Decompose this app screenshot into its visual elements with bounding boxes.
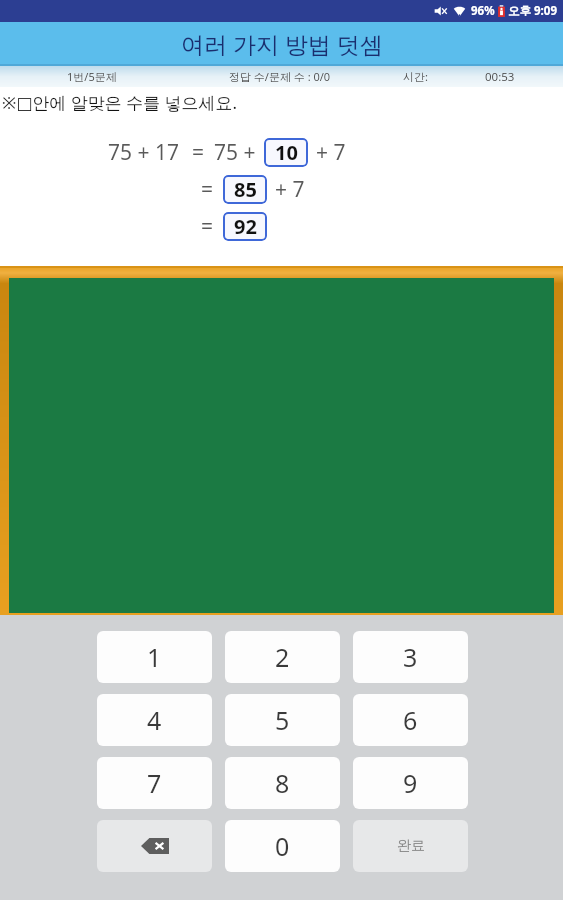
staticText: 3 <box>403 640 418 674</box>
button[interactable]: 7 <box>97 757 212 809</box>
staticText: + 7 <box>316 138 346 167</box>
button[interactable]: 9 <box>353 757 468 809</box>
staticText: 7 <box>147 766 162 800</box>
button[interactable]: 3 <box>353 631 468 683</box>
staticText: 2 <box>275 640 290 674</box>
staticText: 96% <box>471 3 495 19</box>
button[interactable]: 지우기 <box>97 820 212 872</box>
staticText: 8 <box>275 766 290 800</box>
staticText: 75 + <box>214 138 256 167</box>
button[interactable]: 4 <box>97 694 212 746</box>
staticText: 완료 <box>397 837 425 855</box>
staticText: 85 <box>234 176 257 203</box>
button[interactable]: 2 <box>225 631 340 683</box>
staticText: 5 <box>275 703 290 737</box>
button[interactable]: 85 <box>223 175 267 204</box>
staticText: 4 <box>147 703 162 737</box>
staticText: = <box>201 175 214 204</box>
staticText: 오후 9:09 <box>508 3 557 19</box>
button[interactable]: 6 <box>353 694 468 746</box>
button[interactable]: 완료 <box>353 820 468 872</box>
staticText: + 7 <box>275 175 305 204</box>
staticText: 9 <box>403 766 418 800</box>
button[interactable]: 92 <box>223 212 267 241</box>
staticText: = <box>192 138 205 167</box>
staticText: 00:53 <box>485 69 515 85</box>
staticText: 75 + 17 <box>108 138 179 167</box>
staticText: = <box>201 212 214 241</box>
staticText: 6 <box>403 703 418 737</box>
staticText: 여러 가지 방법 덧셈 <box>181 28 383 59</box>
staticText: ※□안에 알맞은 수를 넣으세요. <box>2 91 238 114</box>
staticText: 정답 수/문제 수 : 0/0 <box>229 69 331 84</box>
button[interactable]: 5 <box>225 694 340 746</box>
staticText: 1 <box>147 640 162 674</box>
button[interactable]: 10 <box>264 138 308 167</box>
button[interactable]: 1 <box>97 631 212 683</box>
button[interactable]: 0 <box>225 820 340 872</box>
button[interactable]: 8 <box>225 757 340 809</box>
staticText: 시간: <box>403 69 428 84</box>
staticText: 1번/5문제 <box>67 69 117 84</box>
staticText: 92 <box>234 213 257 240</box>
staticText: 10 <box>275 139 298 166</box>
staticText: 0 <box>275 829 290 863</box>
